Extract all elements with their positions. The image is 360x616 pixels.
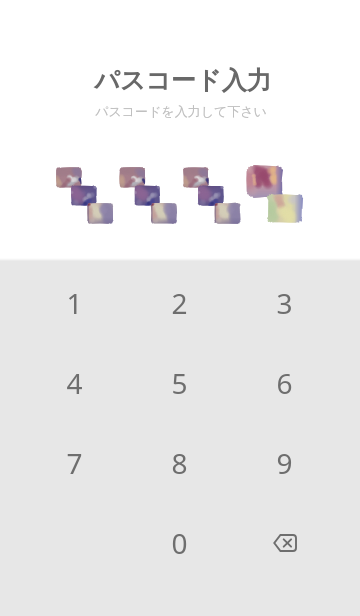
- button[interactable]: 4: [22, 343, 127, 423]
- button[interactable]: 2: [127, 263, 232, 343]
- button[interactable]: 9: [232, 423, 337, 503]
- staticText: 5: [171, 364, 188, 402]
- button[interactable]: 7: [22, 423, 127, 503]
- staticText: パスコード入力: [94, 65, 272, 96]
- staticText: 1: [66, 284, 83, 322]
- staticText: 3: [276, 284, 293, 322]
- staticText: 8: [171, 444, 188, 482]
- button[interactable]: 5: [127, 343, 232, 423]
- button[interactable]: Delete: [232, 503, 337, 583]
- button[interactable]: 3: [232, 263, 337, 343]
- staticText: 9: [276, 444, 293, 482]
- staticText: 7: [66, 444, 83, 482]
- button[interactable]: 8: [127, 423, 232, 503]
- staticText: パスコードを入力して下さい: [95, 103, 267, 119]
- button[interactable]: 6: [232, 343, 337, 423]
- button[interactable]: 1: [22, 263, 127, 343]
- button[interactable]: 0: [127, 503, 232, 583]
- staticText: 4: [66, 364, 83, 402]
- staticText: 6: [276, 364, 293, 402]
- staticText: 2: [171, 284, 188, 322]
- staticText: 0: [171, 524, 188, 562]
